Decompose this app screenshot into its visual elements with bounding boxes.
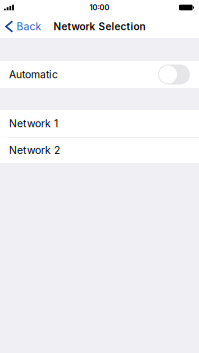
staticText: Back [17,20,42,33]
staticText: Network 1 [9,117,58,130]
staticText: Network 2 [9,144,60,157]
button[interactable]: Network 1 [0,110,199,137]
button[interactable]: Back [0,15,48,37]
button[interactable]: Network 2 [0,138,199,163]
button[interactable]: Automatic [0,61,199,88]
staticText: Automatic [9,68,58,81]
staticText: Network Selection [53,20,145,33]
staticText: 10:00 [89,3,109,12]
